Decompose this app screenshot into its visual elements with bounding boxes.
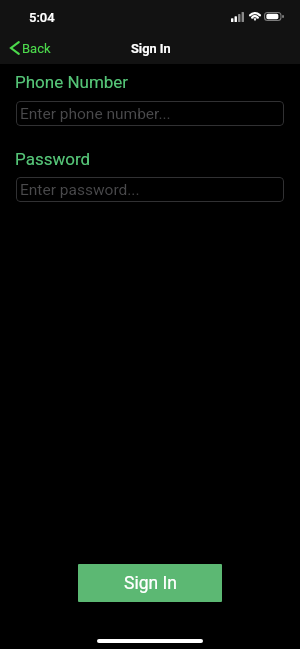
staticText: Sign In (124, 573, 177, 594)
button[interactable]: Sign In (78, 564, 222, 602)
other: Cellular signal (231, 12, 244, 22)
staticText: Enter password... (20, 181, 140, 199)
button[interactable]: Back (5, 36, 51, 60)
staticText: Sign In (131, 41, 171, 56)
staticText: Back (22, 41, 51, 56)
staticText: Enter phone number... (20, 105, 171, 123)
button[interactable]: Enter phone number... (16, 101, 284, 126)
button[interactable]: Enter password... (16, 177, 284, 202)
staticText: Password (15, 149, 91, 169)
staticText: 5:04 (29, 10, 55, 25)
other: Battery (264, 12, 284, 21)
staticText: Phone Number (15, 72, 129, 92)
other: Wi-Fi (248, 10, 262, 20)
